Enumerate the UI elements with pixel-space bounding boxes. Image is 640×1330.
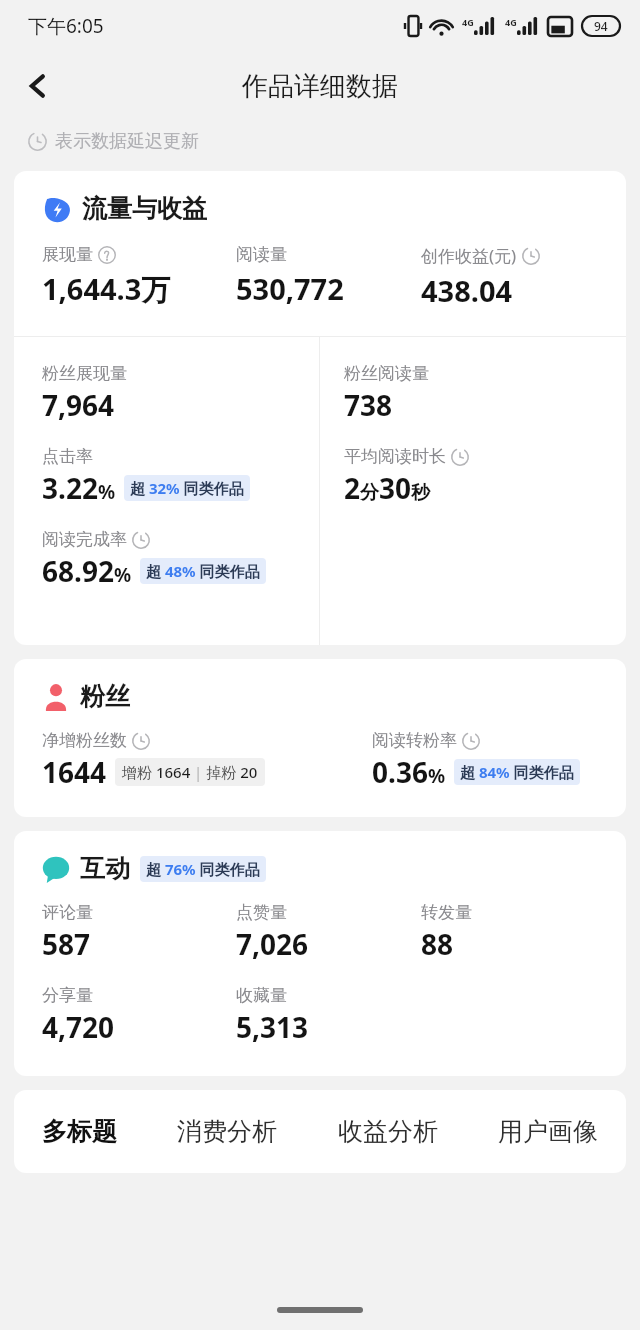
staticText: 点赞量 xyxy=(236,902,287,923)
staticText: 下午6:05 xyxy=(28,13,104,39)
button[interactable]: 超 48% 同类作品 xyxy=(140,558,266,584)
staticText: 流量与收益 xyxy=(82,193,207,224)
staticText: 4G xyxy=(505,16,517,28)
button[interactable]: 增粉 1664 | 掉粉 20 xyxy=(115,758,265,786)
staticText: 转发量 xyxy=(421,902,472,923)
staticText: 2分30秒 xyxy=(344,469,431,507)
staticText: 消费分析 xyxy=(177,1116,277,1147)
button[interactable]: 超 84% 同类作品 xyxy=(454,759,580,785)
staticText: 4,720 xyxy=(42,1008,115,1046)
button[interactable]: 用户画像 xyxy=(492,1112,604,1151)
staticText: 增粉 1664 | 掉粉 20 xyxy=(122,762,258,782)
staticText: 多标题 xyxy=(42,1116,117,1147)
staticText: 88 xyxy=(421,925,454,963)
staticText: 净增粉丝数 xyxy=(42,730,127,751)
staticText: 收益分析 xyxy=(338,1116,438,1147)
staticText: 5,313 xyxy=(236,1008,309,1046)
button[interactable]: 消费分析 xyxy=(171,1112,283,1151)
button[interactable]: Back xyxy=(12,60,64,112)
staticText: 粉丝阅读量 xyxy=(344,363,429,384)
staticText: 0.36% xyxy=(372,753,446,791)
staticText: 4G xyxy=(462,16,474,28)
staticText: 用户画像 xyxy=(498,1116,598,1147)
staticText: 点击率 xyxy=(42,446,93,467)
button[interactable]: 多标题 xyxy=(36,1112,123,1151)
staticText: 互动 xyxy=(80,853,130,884)
staticText: 阅读转粉率 xyxy=(372,730,457,751)
staticText: 超 48% 同类作品 xyxy=(146,561,260,581)
staticText: 7,964 xyxy=(42,386,115,424)
staticText: 表示数据延迟更新 xyxy=(55,130,199,153)
button[interactable]: 超 32% 同类作品 xyxy=(124,475,250,501)
staticText: 作品详细数据 xyxy=(242,70,398,103)
button[interactable]: 收益分析 xyxy=(332,1112,444,1151)
staticText: 展现量 xyxy=(42,244,93,265)
staticText: 平均阅读时长 xyxy=(344,446,446,467)
staticText: 收藏量 xyxy=(236,985,287,1006)
staticText: 超 76% 同类作品 xyxy=(146,859,260,879)
staticText: 1644 xyxy=(42,753,107,791)
staticText: 94 xyxy=(594,18,608,34)
staticText: 1,644.3万 xyxy=(42,269,171,309)
staticText: 68.92% xyxy=(42,552,132,590)
staticText: 分享量 xyxy=(42,985,93,1006)
staticText: 阅读完成率 xyxy=(42,529,127,550)
staticText: 粉丝 xyxy=(80,681,130,712)
staticText: 超 32% 同类作品 xyxy=(130,478,244,498)
button[interactable]: 超 76% 同类作品 xyxy=(140,856,266,882)
staticText: 阅读量 xyxy=(236,244,287,265)
staticText: 587 xyxy=(42,925,91,963)
staticText: 创作收益(元) xyxy=(421,244,517,267)
staticText: 超 84% 同类作品 xyxy=(460,762,574,782)
staticText: 3.22% xyxy=(42,469,116,507)
staticText: 438.04 xyxy=(421,271,513,310)
staticText: 738 xyxy=(344,386,393,424)
staticText: 530,772 xyxy=(236,269,344,308)
staticText: 7,026 xyxy=(236,925,309,963)
staticText: 粉丝展现量 xyxy=(42,363,127,384)
staticText: 评论量 xyxy=(42,902,93,923)
